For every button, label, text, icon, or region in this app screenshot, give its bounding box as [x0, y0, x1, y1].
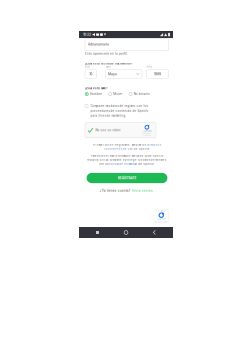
staticText: 10: [89, 72, 92, 76]
button[interactable]: Inicia sesión.: [132, 189, 154, 192]
staticText: Términos y: [147, 143, 161, 146]
staticText: reCAPTCHA: [142, 130, 151, 132]
button[interactable]: Adrianamaria: [85, 38, 168, 51]
staticText: Privacidad - Términos: [154, 220, 168, 222]
button[interactable]: Comparte mis datos de registro con los p…: [85, 104, 153, 118]
button[interactable]: 1999: [146, 70, 168, 78]
staticText: protegido por: [156, 210, 167, 212]
staticText: lee la: [99, 162, 108, 165]
staticText: 10:22: [83, 32, 91, 37]
staticText: reCAPTCHA: [157, 218, 166, 220]
staticText: recopila, utiliza, comparte y protege tu…: [87, 158, 167, 161]
button[interactable]: Recent apps: [87, 227, 107, 238]
button[interactable]: Mujer: [108, 92, 122, 96]
button[interactable]: Mayo: [105, 70, 142, 78]
staticText: No binario: [134, 92, 150, 96]
staticText: Año: [146, 65, 152, 68]
staticText: Inicia sesión.: [132, 189, 154, 192]
staticText: Al hacer clic en Regístrarte, aceptas lo…: [93, 143, 147, 146]
staticText: Política de Privacidad: [108, 162, 137, 165]
button[interactable]: Hombre: [85, 92, 102, 96]
button[interactable]: Términos y: [147, 143, 161, 146]
button[interactable]: REGÍSTRATE: [87, 173, 167, 183]
staticText: de Spotify.: [133, 147, 150, 150]
staticText: Mayo: [108, 72, 117, 76]
staticText: REGÍSTRATE: [117, 176, 136, 180]
staticText: Comparte mis datos de registro con los p…: [90, 104, 148, 118]
staticText: Esto aparecerá en tu perfil.: [85, 52, 128, 56]
button[interactable]: 10: [85, 70, 96, 78]
button[interactable]: Condiciones de uso: [104, 147, 133, 150]
staticText: Adrianamaria: [88, 42, 109, 46]
staticText: 1999: [154, 72, 161, 76]
staticText: ¿Cuál es tu fecha de nacimiento?: [85, 62, 132, 65]
staticText: No soy un robot: [96, 128, 121, 132]
staticText: ¿Cuál es tu sexo?: [85, 87, 107, 90]
button[interactable]: Política de Privacidad: [108, 162, 137, 165]
staticText: Mujer: [113, 92, 122, 96]
staticText: Día: [85, 65, 89, 68]
staticText: Para obtener más información acerca de c…: [91, 154, 163, 157]
button[interactable]: No binario: [129, 92, 150, 96]
staticText: Mes: [105, 65, 110, 68]
button[interactable]: Home: [116, 227, 136, 238]
button[interactable]: Back: [144, 227, 164, 238]
staticText: ¿Ya tienes cuenta?: [100, 189, 132, 192]
staticText: de Spotify.: [137, 162, 154, 165]
staticText: Condiciones de uso: [104, 147, 133, 150]
staticText: Hombre: [90, 92, 102, 96]
staticText: Privacidad - Condiciones: [142, 133, 151, 136]
button[interactable]: No soy un robot: [85, 123, 156, 138]
